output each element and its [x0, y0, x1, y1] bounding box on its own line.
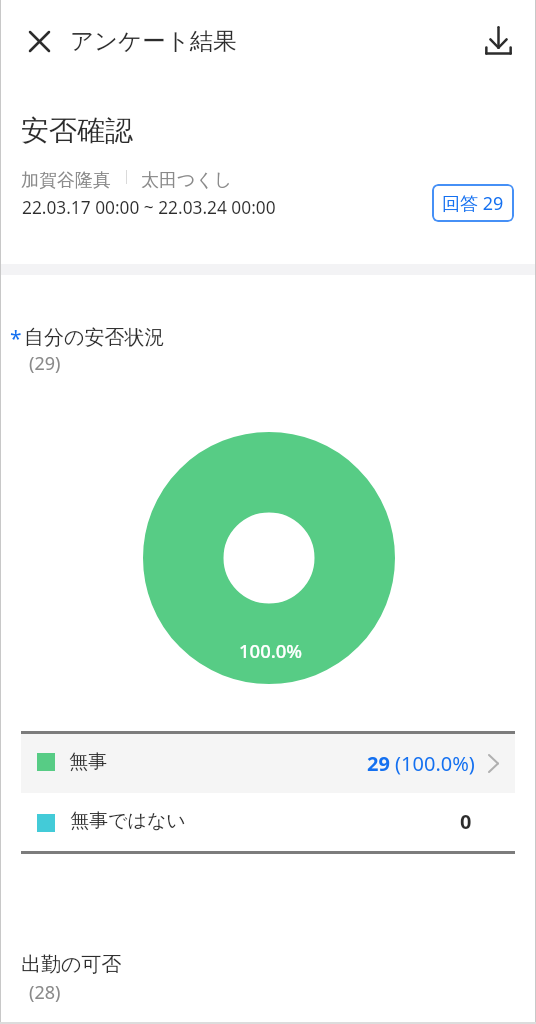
- staticText: 29 (100.0%): [367, 750, 475, 777]
- staticText: (28): [29, 980, 61, 1005]
- staticText: (29): [29, 351, 61, 376]
- staticText: 出勤の可否: [21, 952, 122, 977]
- staticText: 太田つくし: [141, 169, 233, 192]
- button[interactable]: 無事: [21, 734, 515, 793]
- staticText: *: [10, 324, 22, 353]
- button[interactable]: Download: [474, 16, 522, 64]
- staticText: アンケート結果: [70, 26, 237, 56]
- staticText: 無事ではない: [70, 809, 186, 833]
- button[interactable]: 回答 29: [432, 184, 514, 222]
- button[interactable]: Close: [15, 17, 63, 65]
- staticText: 加賀谷隆真: [21, 169, 111, 192]
- staticText: 0: [460, 808, 472, 835]
- staticText: 回答 29: [442, 191, 504, 216]
- staticText: 自分の安否状況: [24, 325, 165, 350]
- staticText: 安否確認: [21, 113, 133, 148]
- staticText: 22.03.17 00:00 ~ 22.03.24 00:00: [22, 196, 276, 220]
- button[interactable]: 無事ではない: [21, 792, 515, 851]
- staticText: 100.0%: [239, 638, 303, 663]
- staticText: 無事: [69, 750, 107, 774]
